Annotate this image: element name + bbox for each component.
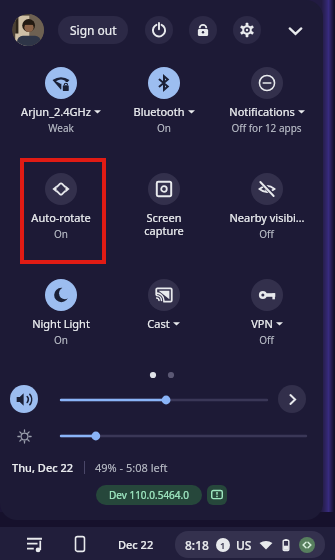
button[interactable]: Thu, Dec 22 — [12, 460, 74, 475]
button[interactable]: Arjun_2.4GHz — [10, 67, 112, 135]
staticText: US — [236, 537, 252, 553]
staticText: Off for 12 apps — [231, 121, 302, 135]
button[interactable]: Collapse — [281, 16, 309, 44]
staticText: Screen capture — [144, 210, 184, 238]
button[interactable]: Send feedback — [207, 485, 227, 505]
button[interactable]: Settings — [233, 16, 261, 44]
button[interactable]: Bluetooth — [112, 67, 215, 135]
button[interactable]: Phone hub — [66, 530, 94, 558]
button[interactable]: More volume settings — [278, 385, 306, 413]
staticText: Arjun_2.4GHz — [21, 104, 91, 119]
staticText: Dec 22 — [118, 537, 154, 552]
staticText: Nearby visibi… — [229, 210, 305, 225]
button[interactable] — [60, 393, 268, 407]
button[interactable]: Brightness — [11, 423, 37, 449]
staticText: On — [54, 227, 68, 241]
button[interactable]: Nearby visibi… — [215, 173, 318, 241]
staticText: VPN — [251, 316, 273, 331]
staticText: Sign out — [70, 22, 117, 38]
staticText: Dev 110.0.5464.0 — [109, 488, 189, 502]
staticText: Off — [259, 227, 274, 241]
button[interactable]: Launcher — [21, 530, 49, 558]
button[interactable]: Notifications — [215, 67, 318, 135]
button[interactable]: Lock — [189, 16, 217, 44]
staticText: On — [54, 333, 68, 347]
staticText: Bluetooth — [133, 104, 185, 119]
button[interactable]: 8:18 — [175, 531, 325, 558]
staticText: 1 — [220, 539, 226, 551]
button[interactable]: Night Light — [10, 279, 112, 347]
staticText: Weak — [48, 121, 74, 135]
staticText: Night Light — [32, 316, 90, 331]
button[interactable] — [60, 429, 307, 443]
staticText: Thu, Dec 22 — [12, 460, 74, 475]
button[interactable]: 49% - 5:08 left — [95, 460, 168, 475]
button[interactable]: Account — [12, 14, 44, 46]
staticText: Notifications — [229, 104, 295, 119]
button[interactable]: Screen capture — [112, 173, 215, 238]
staticText: Off — [259, 333, 274, 347]
button[interactable]: Dec 22 — [112, 530, 160, 558]
button[interactable]: Auto-rotate — [10, 173, 112, 241]
button[interactable]: Volume — [10, 385, 38, 413]
staticText: 49% - 5:08 left — [95, 460, 168, 475]
staticText: Cast — [147, 316, 170, 331]
button[interactable]: Power — [145, 16, 173, 44]
staticText: 8:18 — [185, 537, 209, 553]
staticText: Auto-rotate — [31, 210, 91, 225]
button[interactable]: VPN — [215, 279, 318, 347]
button[interactable]: Dev 110.0.5464.0 — [96, 485, 202, 505]
button[interactable]: Sign out — [58, 16, 128, 44]
staticText: On — [157, 121, 171, 135]
button[interactable]: Cast — [112, 279, 215, 331]
